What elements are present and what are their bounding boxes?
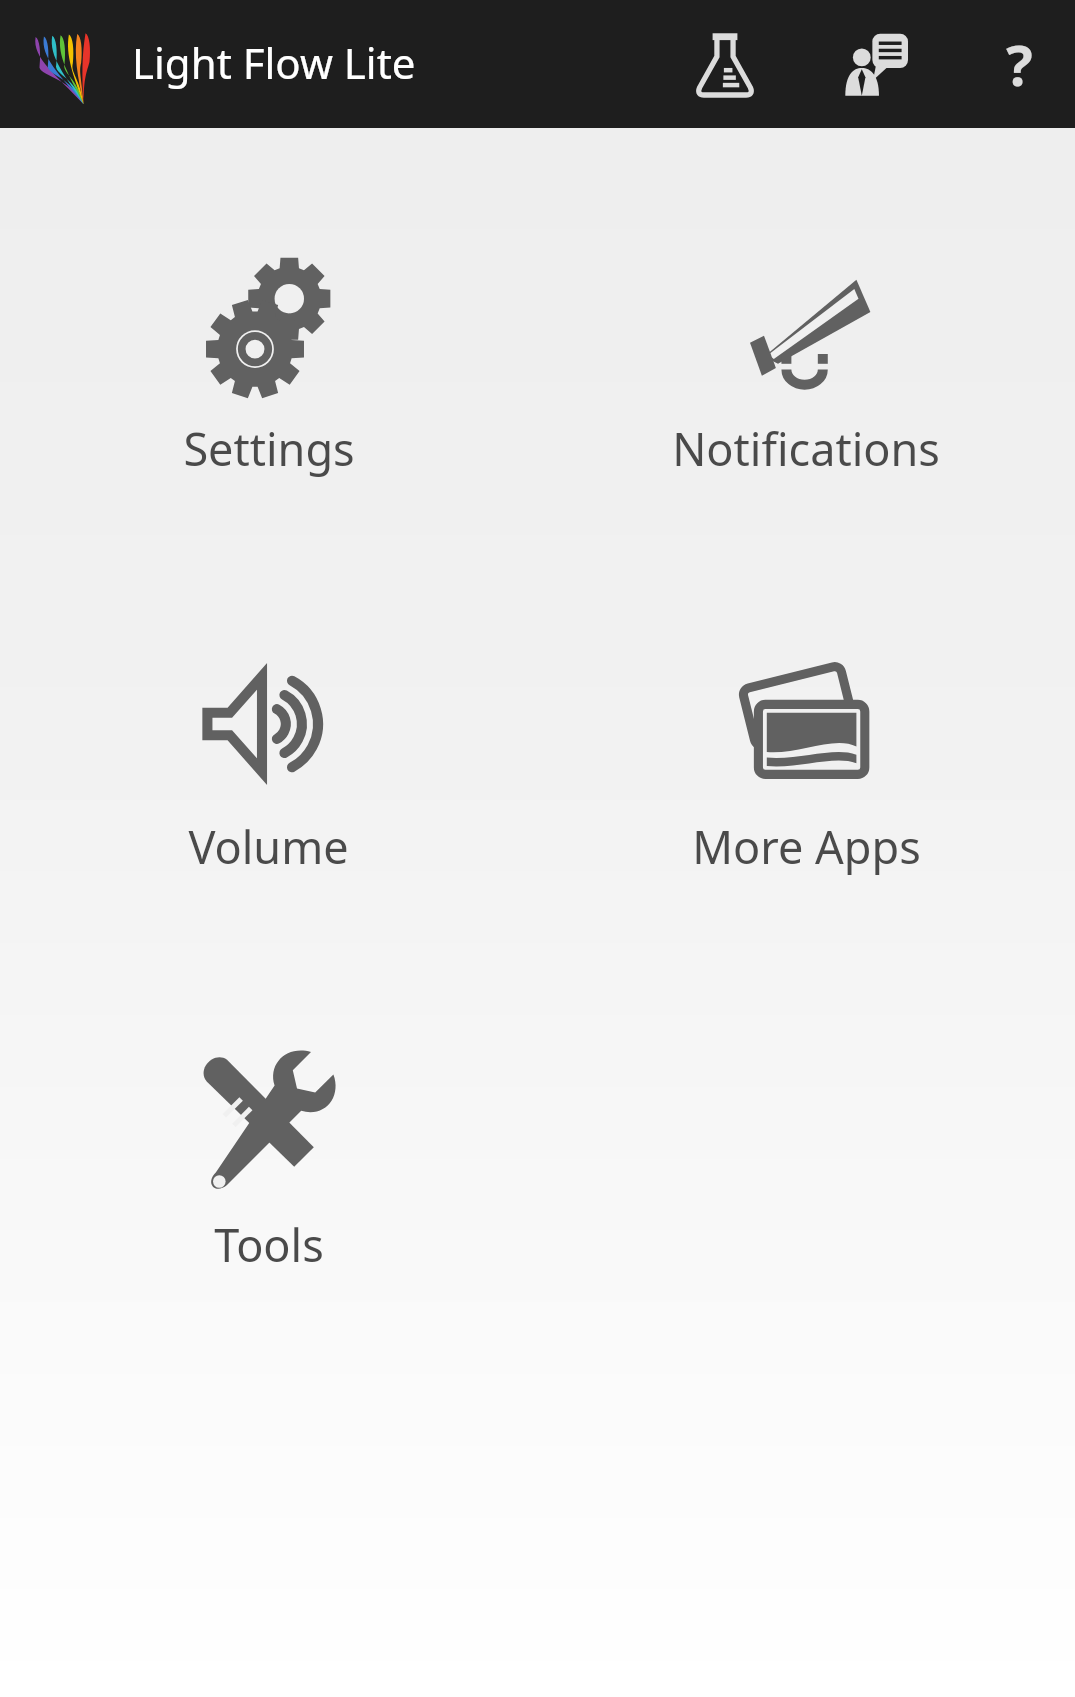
button[interactable]: Test notification	[677, 16, 773, 112]
button[interactable]: Tools	[0, 934, 537, 1332]
staticText: Tools	[214, 1214, 324, 1275]
button[interactable]: Support	[827, 16, 923, 112]
staticText: Settings	[183, 418, 355, 479]
staticText: Light Flow Lite	[132, 34, 416, 91]
button[interactable]: Settings	[0, 138, 537, 536]
staticText: Notifications	[672, 418, 940, 479]
button[interactable]: Light Flow logo	[26, 16, 122, 112]
button[interactable]: Volume	[0, 536, 537, 934]
button[interactable]: More Apps	[537, 536, 1075, 934]
button[interactable]: Help	[971, 16, 1067, 112]
button[interactable]: Notifications	[537, 138, 1075, 536]
staticText: Volume	[188, 816, 349, 877]
staticText: ?	[1006, 26, 1033, 102]
staticText: More Apps	[692, 816, 921, 877]
